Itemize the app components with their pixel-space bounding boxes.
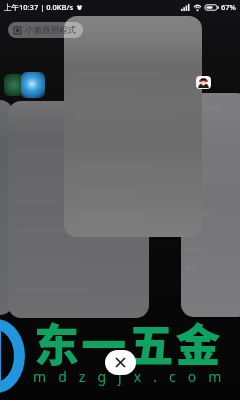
staticText: 上午10:37 | 0.0KB/s	[4, 2, 74, 12]
button[interactable]: Close	[105, 350, 136, 375]
button[interactable]	[64, 16, 202, 237]
button[interactable]: 小窗應用程式	[8, 22, 83, 38]
staticText: 东一五金	[34, 310, 223, 375]
button[interactable]	[181, 93, 240, 317]
staticText: 67%	[221, 2, 236, 12]
button[interactable]	[8, 101, 149, 318]
staticText: m d z g j x . c o m	[33, 367, 226, 386]
button[interactable]: Profile avatar	[196, 76, 211, 89]
button[interactable]	[0, 100, 13, 315]
staticText: 小窗應用程式	[25, 25, 76, 36]
